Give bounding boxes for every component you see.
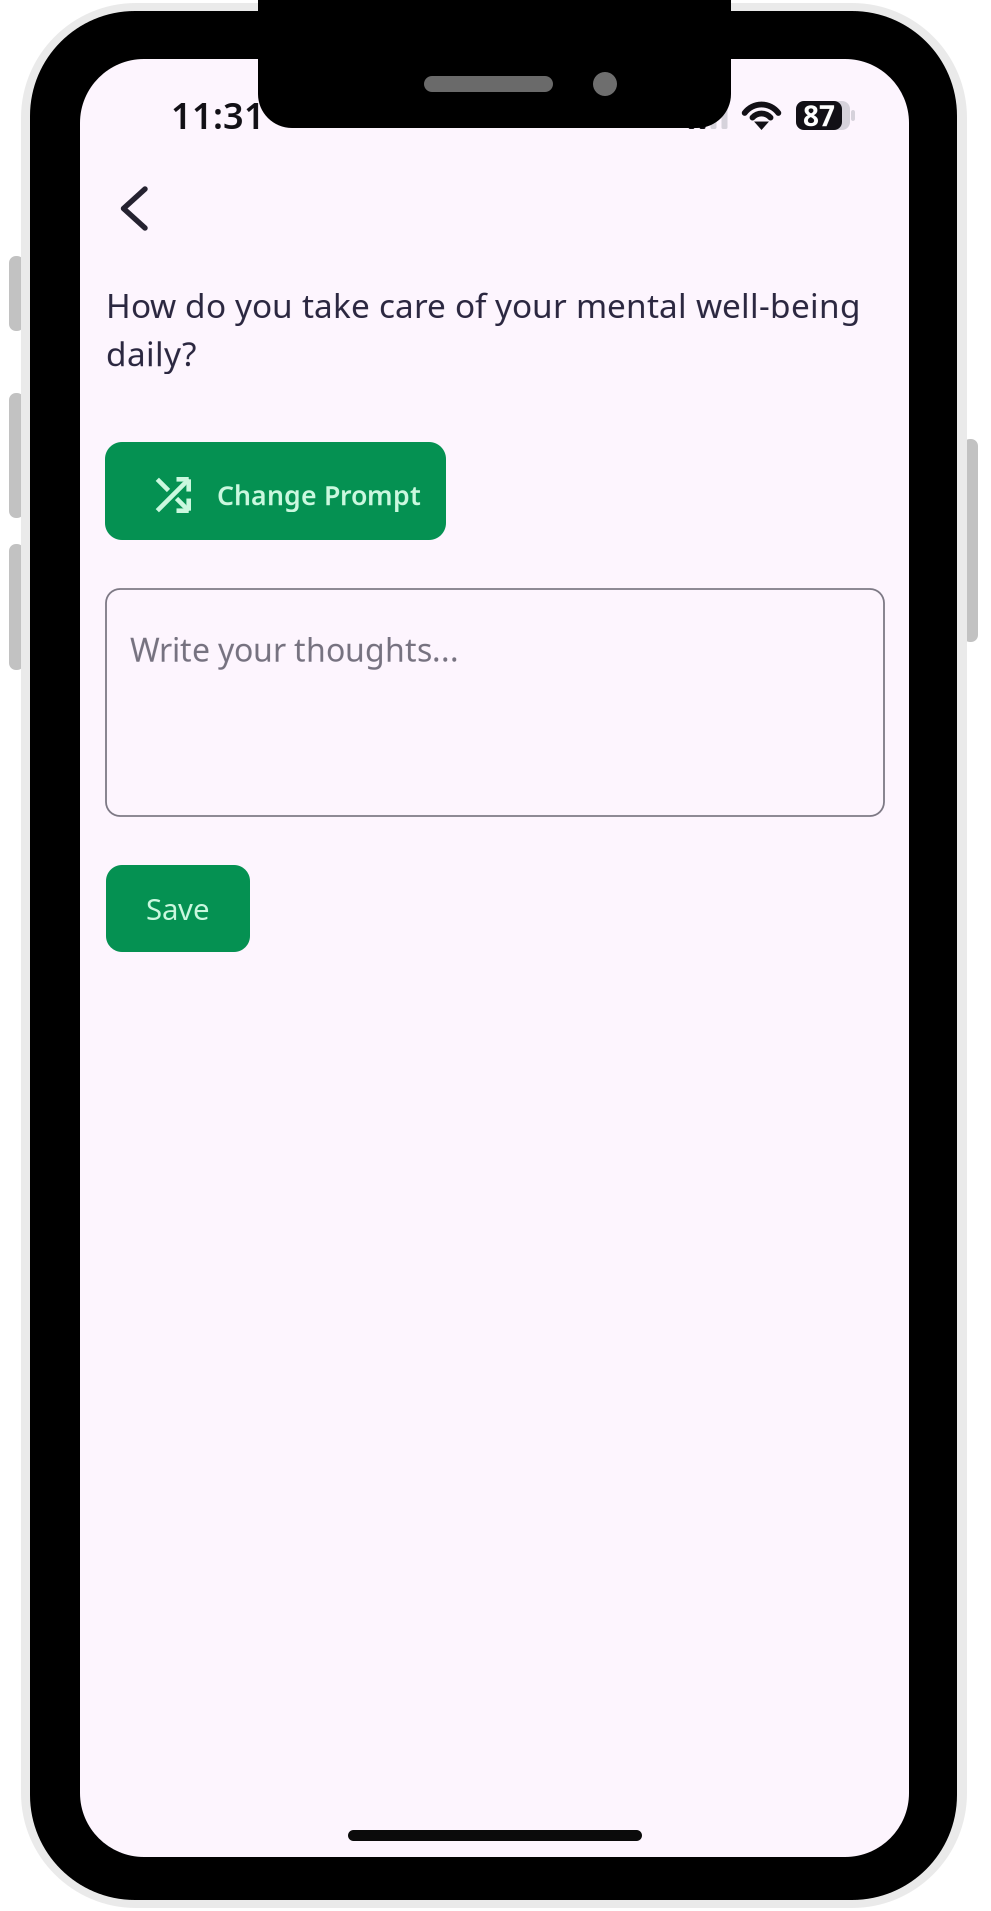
staticText: 87 bbox=[803, 97, 835, 134]
staticText: How do you take care of your mental well… bbox=[106, 283, 861, 375]
staticText: Change Prompt bbox=[217, 477, 421, 513]
button[interactable]: Back bbox=[94, 171, 174, 247]
staticText: Save bbox=[146, 889, 210, 928]
staticText: 11:31 bbox=[171, 91, 265, 139]
staticText: Write your thoughts... bbox=[130, 628, 459, 670]
button[interactable]: Change Prompt bbox=[105, 442, 446, 540]
button[interactable]: Save bbox=[106, 865, 250, 952]
